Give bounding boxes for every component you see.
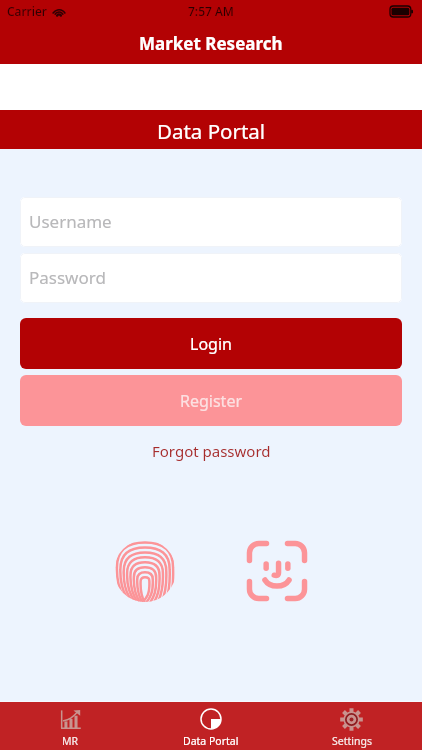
staticText: Data Portal bbox=[183, 734, 239, 748]
button[interactable]: Settings bbox=[281, 702, 422, 750]
staticText: 7:57 AM bbox=[188, 3, 234, 19]
staticText: Market Research bbox=[139, 32, 283, 55]
button[interactable]: Data Portal bbox=[140, 702, 281, 750]
button[interactable]: Forgot password bbox=[148, 437, 275, 465]
button[interactable]: Username bbox=[20, 197, 402, 247]
button[interactable]: MR bbox=[0, 702, 140, 750]
staticText: Login bbox=[190, 333, 232, 355]
staticText: Register bbox=[180, 390, 243, 412]
button[interactable]: Face ID login bbox=[245, 539, 309, 603]
staticText: Settings bbox=[332, 734, 372, 748]
staticText: MR bbox=[62, 734, 79, 748]
staticText: Username bbox=[29, 210, 112, 233]
staticText: Password bbox=[29, 266, 106, 289]
button[interactable]: Password bbox=[20, 253, 402, 303]
button[interactable]: Login bbox=[20, 318, 402, 369]
staticText: Carrier bbox=[7, 3, 47, 19]
button[interactable]: Register bbox=[20, 375, 402, 426]
staticText: Data Portal bbox=[157, 117, 266, 145]
button[interactable]: Fingerprint login bbox=[113, 539, 177, 603]
